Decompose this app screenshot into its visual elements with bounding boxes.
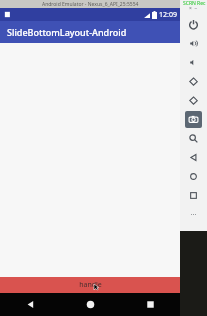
button[interactable]: Rotate right [185,92,202,109]
button[interactable]: Volume up [185,35,202,52]
staticText: × − [189,5,198,12]
button[interactable]: handle [0,277,180,293]
button[interactable]: Rotate left [185,73,202,90]
button[interactable]: Take screenshot [185,111,202,128]
button[interactable]: Overview [185,187,202,204]
button[interactable]: SlideBottomLayout-Android [0,21,180,43]
button[interactable]: More [185,206,202,223]
staticText: SlideBottomLayout-Android [7,26,127,38]
staticText: 12:09 [159,10,177,20]
button[interactable]: Home [60,293,120,316]
button[interactable]: Zoom [185,130,202,147]
button[interactable]: Home [185,168,202,185]
staticText: SCRN Rec [183,0,206,7]
staticText: Android Emulator - Nexus_6_API_25:5554 [42,1,139,8]
button[interactable]: Volume down [185,54,202,71]
button[interactable]: Back [185,149,202,166]
button[interactable]: Power [185,16,202,33]
button[interactable]: Back [0,293,60,316]
button[interactable]: Recent apps [120,293,180,316]
staticText: handle [79,280,102,290]
